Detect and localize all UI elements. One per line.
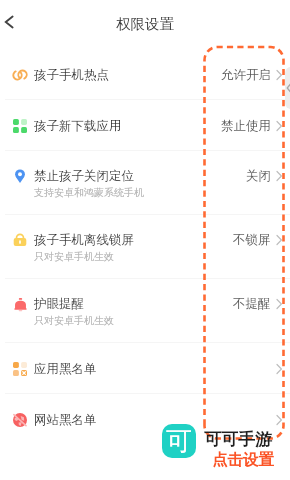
button[interactable]: Back — [0, 9, 22, 35]
staticText: 可可手游 — [204, 429, 272, 450]
staticText: 点击设置 — [212, 450, 274, 470]
staticText: 禁止孩子关闭定位 — [34, 168, 134, 184]
staticText: 只对安卓手机生效 — [34, 250, 114, 263]
staticText: 孩子手机离线锁屏 — [34, 232, 134, 248]
staticText: 可 — [166, 425, 192, 458]
button[interactable]: 孩子手机离线锁屏 — [0, 215, 290, 279]
staticText: 不锁屏 — [233, 232, 271, 248]
staticText: 关闭 — [246, 168, 271, 184]
staticText: 只对安卓手机生效 — [34, 314, 114, 327]
button[interactable]: 应用黑名单 — [0, 343, 290, 394]
button[interactable]: 孩子新下载应用 — [0, 100, 290, 151]
staticText: 禁止使用 — [221, 118, 271, 134]
staticText: 孩子手机热点 — [34, 67, 109, 83]
staticText: 不提醒 — [233, 296, 271, 312]
staticText: 权限设置 — [116, 15, 174, 33]
staticText: 护眼提醒 — [34, 296, 84, 312]
button[interactable]: 禁止孩子关闭定位 — [0, 151, 290, 215]
staticText: 允许开启 — [221, 67, 271, 83]
staticText: 网站黑名单 — [34, 412, 97, 428]
button[interactable]: 网站黑名单 — [0, 394, 290, 445]
button[interactable]: 护眼提醒 — [0, 279, 290, 343]
button[interactable]: 孩子手机热点 — [0, 49, 290, 100]
button[interactable]: Expand panel — [285, 67, 290, 109]
staticText: 支持安卓和鸿蒙系统手机 — [34, 186, 144, 199]
staticText: 孩子新下载应用 — [34, 118, 122, 134]
staticText: 应用黑名单 — [34, 361, 97, 377]
